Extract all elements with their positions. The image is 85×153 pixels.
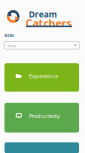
button[interactable]: Home [4, 41, 79, 49]
staticText: MENU: [4, 34, 14, 38]
button[interactable]: Experience [4, 63, 79, 92]
staticText: Catchers [26, 16, 72, 30]
staticText: Productivity [29, 112, 60, 120]
staticText: Home [8, 44, 17, 48]
button[interactable]: Productivity [4, 103, 79, 132]
staticText: Experience [29, 72, 58, 80]
staticText: Dream [29, 8, 57, 20]
button[interactable]: Third section [4, 142, 79, 153]
